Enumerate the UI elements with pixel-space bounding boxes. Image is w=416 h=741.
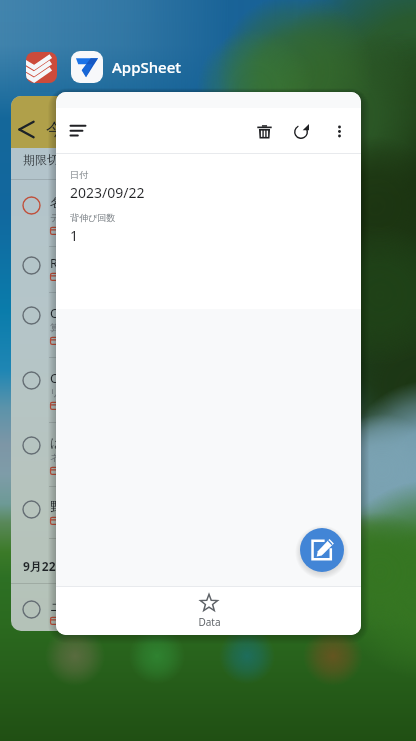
staticText: ニュースを読む [50, 599, 139, 615]
staticText: 今日 [62, 224, 80, 235]
staticText: 2023/09/22 [70, 183, 145, 202]
button[interactable]: Refresh [283, 113, 319, 149]
staticText: 今日 [46, 119, 80, 140]
staticText: ネタ帳に追加 [50, 452, 108, 464]
staticText: 算数ドリル [50, 322, 99, 334]
button[interactable]: Add record [300, 528, 344, 572]
staticText: Composeの記事 [50, 370, 144, 387]
staticText: 日付 [70, 169, 88, 180]
staticText: 1 [70, 226, 79, 245]
button[interactable]: More options [321, 113, 357, 149]
button[interactable]: Data [169, 590, 249, 633]
staticText: 名前を考える [50, 195, 126, 211]
staticText: Readmeを書く [50, 255, 137, 272]
staticText: Data [198, 615, 221, 629]
staticText: はじめる準備 [50, 435, 127, 451]
staticText: 背伸び回数 [70, 212, 116, 223]
button[interactable]: Delete [246, 113, 282, 149]
staticText: リリースノート [50, 387, 118, 399]
staticText: 期限切れ [23, 152, 72, 167]
staticText: 野球の練習 [50, 499, 113, 515]
staticText: Compose入門 [50, 305, 131, 322]
staticText: デザイン計画 [50, 212, 108, 224]
staticText: 9月22日 · 金曜日 [23, 558, 114, 574]
button[interactable]: Sort [57, 110, 98, 151]
staticText: AppSheet [112, 57, 182, 77]
